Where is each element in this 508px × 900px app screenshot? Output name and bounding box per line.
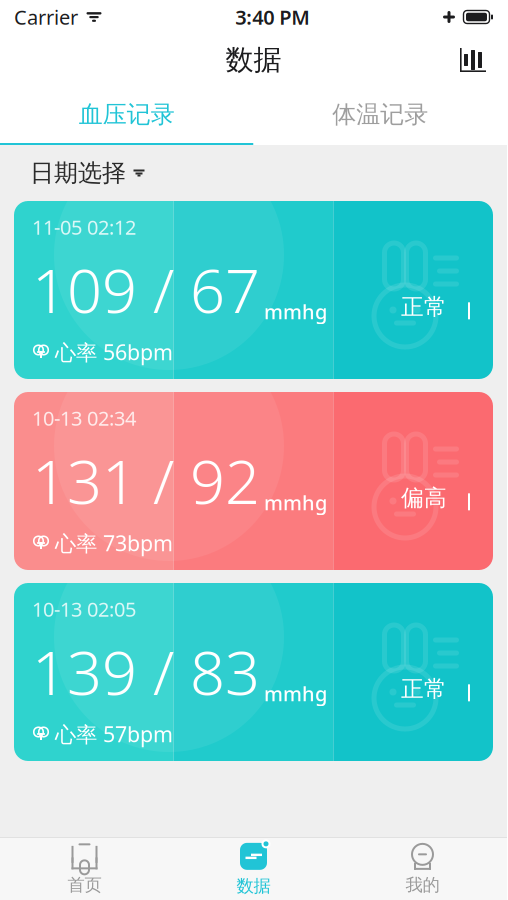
button[interactable]: 体温记录 xyxy=(253,86,507,143)
staticText: 正常 xyxy=(401,675,447,703)
button[interactable]: 日期选择 xyxy=(0,145,507,201)
button[interactable]: 10-13 02:34 xyxy=(14,392,493,570)
staticText: 131 / 92 xyxy=(32,439,260,521)
button[interactable]: 我的 xyxy=(338,838,507,900)
staticText: 我的 xyxy=(405,874,439,896)
staticText: 心率 73bpm xyxy=(55,529,173,557)
staticText: 心率 56bpm xyxy=(55,338,173,366)
staticText: 数据 xyxy=(225,43,281,77)
button[interactable]: 10-13 02:05 xyxy=(14,583,493,761)
staticText: 血压记录 xyxy=(79,100,175,129)
staticText: 109 / 67 xyxy=(32,248,260,330)
staticText: 日期选择 xyxy=(30,158,126,188)
staticText: 139 / 83 xyxy=(32,630,260,712)
staticText: mmhg xyxy=(264,298,327,325)
staticText: 体温记录 xyxy=(332,100,428,129)
staticText: 10-13 02:05 xyxy=(32,596,136,622)
staticText: 数据 xyxy=(236,875,270,897)
button[interactable]: 血压记录 xyxy=(0,86,253,143)
button[interactable]: 11-05 02:12 xyxy=(14,201,493,379)
staticText: 11-05 02:12 xyxy=(32,214,136,240)
staticText: mmhg xyxy=(264,489,327,516)
staticText: 心率 57bpm xyxy=(55,720,173,748)
button[interactable]: 首页 xyxy=(0,838,169,900)
staticText: 3:40 PM xyxy=(235,4,310,30)
staticText: 正常 xyxy=(401,293,447,321)
button[interactable]: 数据 xyxy=(169,838,338,900)
staticText: 首页 xyxy=(67,874,101,896)
staticText: 10-13 02:34 xyxy=(32,405,136,431)
staticText: 偏高 xyxy=(401,484,447,512)
button[interactable]: 图表统计 xyxy=(447,37,499,83)
staticText: mmhg xyxy=(264,680,327,707)
staticText: Carrier xyxy=(14,4,78,30)
